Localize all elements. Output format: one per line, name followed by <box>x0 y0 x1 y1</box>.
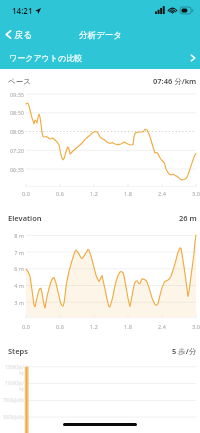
staticText: 8 m <box>2 232 24 239</box>
staticText: 1.2 <box>86 323 102 330</box>
staticText: 07:46 分/km <box>153 76 197 86</box>
staticText: 1.2 <box>86 190 102 197</box>
staticText: 0.6 <box>52 323 68 330</box>
staticText: 07:20 <box>2 147 24 154</box>
staticText: 3000歩/時 <box>1 414 24 420</box>
staticText: 1.8 <box>120 323 136 330</box>
staticText: 3.0 <box>188 190 200 197</box>
staticText: 15000歩/時 <box>1 364 24 376</box>
staticText: 09:35 <box>2 91 24 98</box>
staticText: 0.0 <box>18 190 34 197</box>
staticText: Elevation <box>8 213 42 223</box>
staticText: 戻る <box>14 29 33 40</box>
staticText: ワークアウトの比較 <box>9 53 83 63</box>
staticText: 06:35 <box>2 166 24 173</box>
staticText: 6 m <box>2 265 24 272</box>
button[interactable]: 戻る <box>0 26 41 43</box>
staticText: 7 m <box>2 249 24 256</box>
staticText: 14:21 <box>12 5 33 16</box>
staticText: 4 m <box>2 282 24 289</box>
staticText: 26 m <box>179 213 197 223</box>
staticText: 7000歩/時 <box>1 397 24 403</box>
staticText: 0.6 <box>52 190 68 197</box>
staticText: 1.8 <box>120 190 136 197</box>
staticText: 08:50 <box>2 109 24 116</box>
staticText: 5 歩/分 <box>172 346 197 356</box>
staticText: 2.4 <box>154 190 170 197</box>
staticText: 2.4 <box>154 323 170 330</box>
staticText: 11000歩/時 <box>1 380 24 392</box>
staticText: 0.0 <box>18 323 34 330</box>
staticText: Steps <box>8 346 28 356</box>
staticText: ペース <box>8 77 31 86</box>
staticText: 08:05 <box>2 128 24 135</box>
button[interactable]: ワークアウトの比較 <box>0 42 200 69</box>
staticText: 3.0 <box>188 323 200 330</box>
staticText: 3 m <box>2 299 24 306</box>
staticText: 分析データ <box>79 30 122 41</box>
